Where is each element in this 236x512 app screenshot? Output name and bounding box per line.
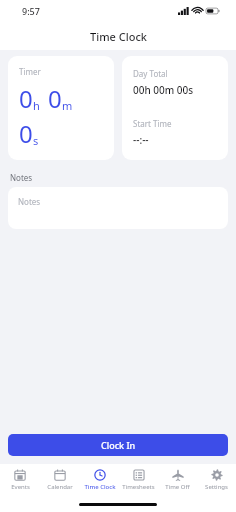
- button[interactable]: Events: [0, 464, 40, 496]
- button[interactable]: Day Total: [122, 56, 228, 160]
- staticText: m: [62, 98, 73, 113]
- button[interactable]: Clock In: [8, 434, 228, 456]
- staticText: h: [33, 98, 40, 113]
- staticText: Clock In: [101, 439, 136, 451]
- staticText: Time Clock: [84, 483, 116, 491]
- staticText: 0: [48, 82, 62, 115]
- button[interactable]: Time Clock: [80, 464, 119, 496]
- button[interactable]: Timesheets: [119, 464, 158, 496]
- staticText: Time Off: [165, 483, 190, 491]
- staticText: 0: [19, 82, 33, 115]
- staticText: Start Time: [133, 118, 172, 129]
- staticText: Timesheets: [122, 483, 155, 491]
- staticText: 00h 00m 00s: [133, 83, 194, 97]
- staticText: Time Clock: [90, 29, 147, 44]
- staticText: Timer: [19, 66, 41, 77]
- staticText: --:--: [133, 133, 149, 147]
- staticText: Events: [11, 483, 30, 491]
- button[interactable]: Time Off: [158, 464, 197, 496]
- staticText: Settings: [205, 483, 228, 491]
- button[interactable]: Settings: [197, 464, 236, 496]
- staticText: Calendar: [47, 483, 73, 491]
- staticText: Notes: [10, 172, 33, 183]
- staticText: 0: [19, 117, 33, 150]
- button[interactable]: Notes: [8, 187, 228, 229]
- staticText: Day Total: [133, 68, 168, 79]
- button[interactable]: Calendar: [40, 464, 80, 496]
- staticText: Notes: [18, 196, 41, 207]
- staticText: s: [33, 133, 39, 148]
- staticText: 9:57: [22, 5, 40, 17]
- button[interactable]: Timer: [8, 56, 114, 160]
